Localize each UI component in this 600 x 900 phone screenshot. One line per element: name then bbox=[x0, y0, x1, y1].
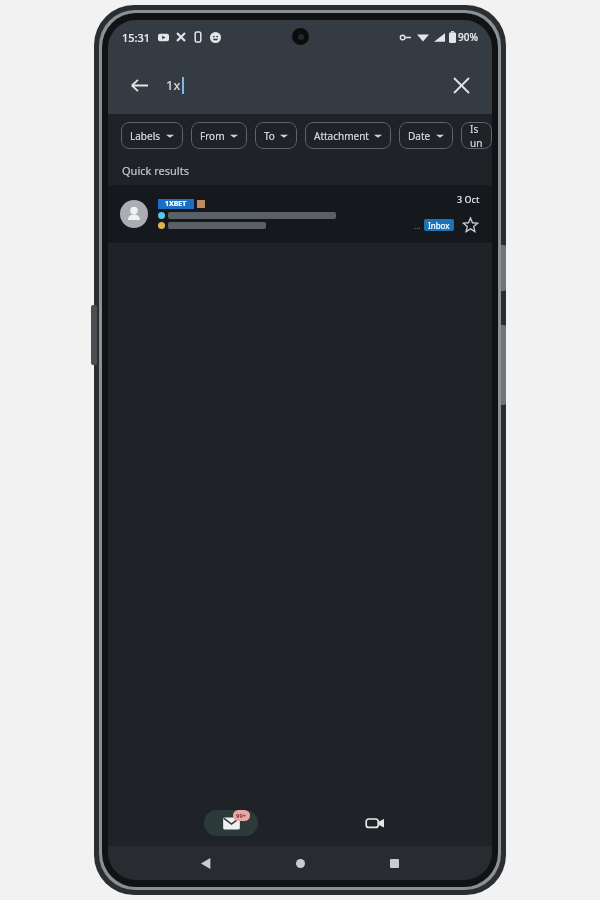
button[interactable]: Clear search bbox=[440, 64, 482, 106]
button[interactable]: Labels bbox=[121, 122, 183, 149]
button[interactable]: To bbox=[255, 122, 297, 149]
button[interactable]: Meet bbox=[355, 803, 395, 843]
staticText: 90% bbox=[458, 30, 478, 44]
staticText: 1x bbox=[166, 76, 181, 94]
staticText: Date bbox=[408, 129, 431, 143]
staticText: Labels bbox=[130, 129, 161, 143]
staticText: Attachment bbox=[314, 129, 369, 143]
staticText: To bbox=[264, 129, 275, 143]
button[interactable]: Back bbox=[191, 848, 221, 878]
button[interactable]: 1XBET bbox=[108, 185, 492, 243]
staticText: Inbox bbox=[428, 220, 450, 231]
button[interactable]: Recents bbox=[379, 848, 409, 878]
button[interactable]: Home bbox=[285, 848, 315, 878]
staticText: 99+ bbox=[236, 812, 247, 820]
staticText: Quick results bbox=[122, 163, 189, 178]
button[interactable]: Attachment bbox=[305, 122, 391, 149]
staticText: 15:31 bbox=[122, 30, 151, 45]
button[interactable]: Is unr bbox=[461, 122, 492, 149]
staticText: ... bbox=[414, 220, 421, 231]
button[interactable]: Back bbox=[118, 64, 160, 106]
button[interactable]: Date bbox=[399, 122, 453, 149]
staticText: 1XBET bbox=[165, 199, 187, 209]
staticText: From bbox=[200, 129, 225, 143]
button[interactable]: From bbox=[191, 122, 247, 149]
button[interactable]: Mail bbox=[204, 810, 258, 836]
staticText: 3 Oct bbox=[457, 193, 480, 205]
button[interactable]: Star bbox=[460, 215, 480, 235]
staticText: Is unr bbox=[470, 122, 483, 149]
